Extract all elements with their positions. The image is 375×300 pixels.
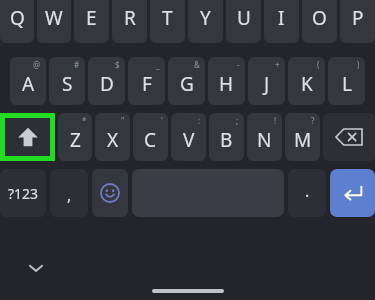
staticText: X: [107, 127, 119, 153]
button[interactable]: $: [88, 57, 125, 105]
button[interactable]: 9: [302, 0, 337, 43]
staticText: +: [275, 59, 280, 70]
staticText: P: [352, 5, 364, 31]
button[interactable]: (: [288, 57, 325, 105]
staticText: D: [100, 71, 114, 97]
staticText: *: [82, 115, 87, 126]
staticText: -: [237, 59, 240, 70]
staticText: T: [162, 5, 173, 31]
staticText: B: [220, 127, 233, 153]
staticText: :: [198, 115, 201, 126]
staticText: S: [62, 71, 73, 97]
staticText: I: [278, 5, 285, 31]
staticText: V: [183, 127, 195, 153]
staticText: #: [74, 59, 80, 70]
staticText: Y: [200, 5, 211, 31]
staticText: J: [264, 71, 270, 97]
button[interactable]: Shift: [0, 113, 55, 161]
button[interactable]: Hide keyboard: [22, 254, 50, 282]
button[interactable]: _: [128, 57, 165, 105]
staticText: F: [142, 71, 152, 97]
button[interactable]: +: [248, 57, 285, 105]
button[interactable]: 8: [264, 0, 299, 43]
staticText: @: [33, 59, 41, 70]
button[interactable]: *: [58, 113, 92, 161]
staticText: N: [257, 127, 272, 153]
staticText: $: [115, 59, 120, 70]
staticText: C: [144, 127, 157, 153]
button[interactable]: #: [49, 57, 85, 105]
staticText: ;: [236, 115, 239, 126]
staticText: H: [219, 71, 234, 97]
staticText: G: [180, 71, 194, 97]
button[interactable]: ?: [285, 113, 320, 161]
button[interactable]: ): [328, 57, 365, 105]
button[interactable]: @: [10, 57, 46, 105]
staticText: M: [294, 127, 312, 153]
staticText: ): [357, 59, 360, 70]
button[interactable]: 4: [112, 0, 147, 43]
button[interactable]: 3: [74, 0, 109, 43]
button[interactable]: Period: [288, 169, 326, 217]
staticText: &: [194, 59, 200, 70]
staticText: !: [274, 115, 277, 126]
button[interactable]: ": [95, 113, 130, 161]
button[interactable]: :: [171, 113, 206, 161]
button[interactable]: 0: [340, 0, 375, 43]
staticText: K: [301, 71, 313, 97]
button[interactable]: 7: [226, 0, 261, 43]
button[interactable]: &: [168, 57, 205, 105]
staticText: U: [237, 5, 251, 31]
staticText: (: [317, 59, 320, 70]
button[interactable]: ?123: [0, 169, 46, 217]
button[interactable]: Enter: [330, 169, 375, 217]
staticText: .: [305, 180, 310, 202]
staticText: L: [342, 71, 352, 97]
button[interactable]: 6: [188, 0, 223, 43]
staticText: R: [124, 5, 136, 31]
staticText: _: [156, 59, 160, 70]
staticText: ?123: [8, 184, 39, 203]
button[interactable]: ': [133, 113, 168, 161]
staticText: ,: [67, 184, 72, 206]
button[interactable]: -: [208, 57, 245, 105]
staticText: W: [45, 5, 63, 31]
staticText: Q: [10, 5, 25, 31]
staticText: A: [22, 71, 35, 97]
button[interactable]: 5: [150, 0, 185, 43]
staticText: ": [121, 115, 125, 126]
button[interactable]: Backspace: [323, 113, 375, 161]
staticText: E: [86, 5, 97, 31]
button[interactable]: 2: [37, 0, 71, 43]
button[interactable]: 1: [0, 0, 34, 43]
button[interactable]: !: [247, 113, 282, 161]
staticText: O: [312, 5, 327, 31]
staticText: ': [161, 115, 163, 126]
staticText: ?: [311, 115, 315, 126]
staticText: Z: [70, 127, 81, 153]
button[interactable]: Emoji: [92, 169, 128, 217]
button[interactable]: Comma: [50, 169, 88, 217]
button[interactable]: ;: [209, 113, 244, 161]
